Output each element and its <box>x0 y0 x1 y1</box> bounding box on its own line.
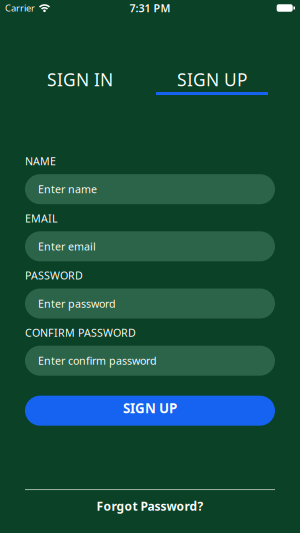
staticText: PASSWORD <box>25 268 83 282</box>
staticText: Enter confirm password <box>38 354 157 368</box>
staticText: EMAIL <box>25 211 58 225</box>
button[interactable]: SIGN UP <box>25 396 275 426</box>
button[interactable]: SIGN UP <box>156 68 268 95</box>
staticText: Enter name <box>38 182 97 196</box>
button[interactable]: Forgot Password? <box>96 498 203 514</box>
staticText: Enter email <box>38 239 96 253</box>
staticText: SIGN UP <box>123 399 177 417</box>
staticText: Carrier <box>5 2 35 14</box>
staticText: CONFIRM PASSWORD <box>25 325 136 340</box>
button[interactable]: Enter password <box>25 288 275 318</box>
staticText: SIGN UP <box>177 68 247 91</box>
staticText: Forgot Password? <box>96 498 203 514</box>
staticText: SIGN IN <box>47 68 113 91</box>
button[interactable]: SIGN IN <box>24 68 136 95</box>
button[interactable]: Enter name <box>25 174 275 204</box>
staticText: 7:31 PM <box>129 1 170 15</box>
button[interactable]: Enter email <box>25 231 275 261</box>
staticText: Enter password <box>38 296 116 311</box>
button[interactable]: Enter confirm password <box>25 346 275 376</box>
staticText: NAME <box>25 154 56 168</box>
